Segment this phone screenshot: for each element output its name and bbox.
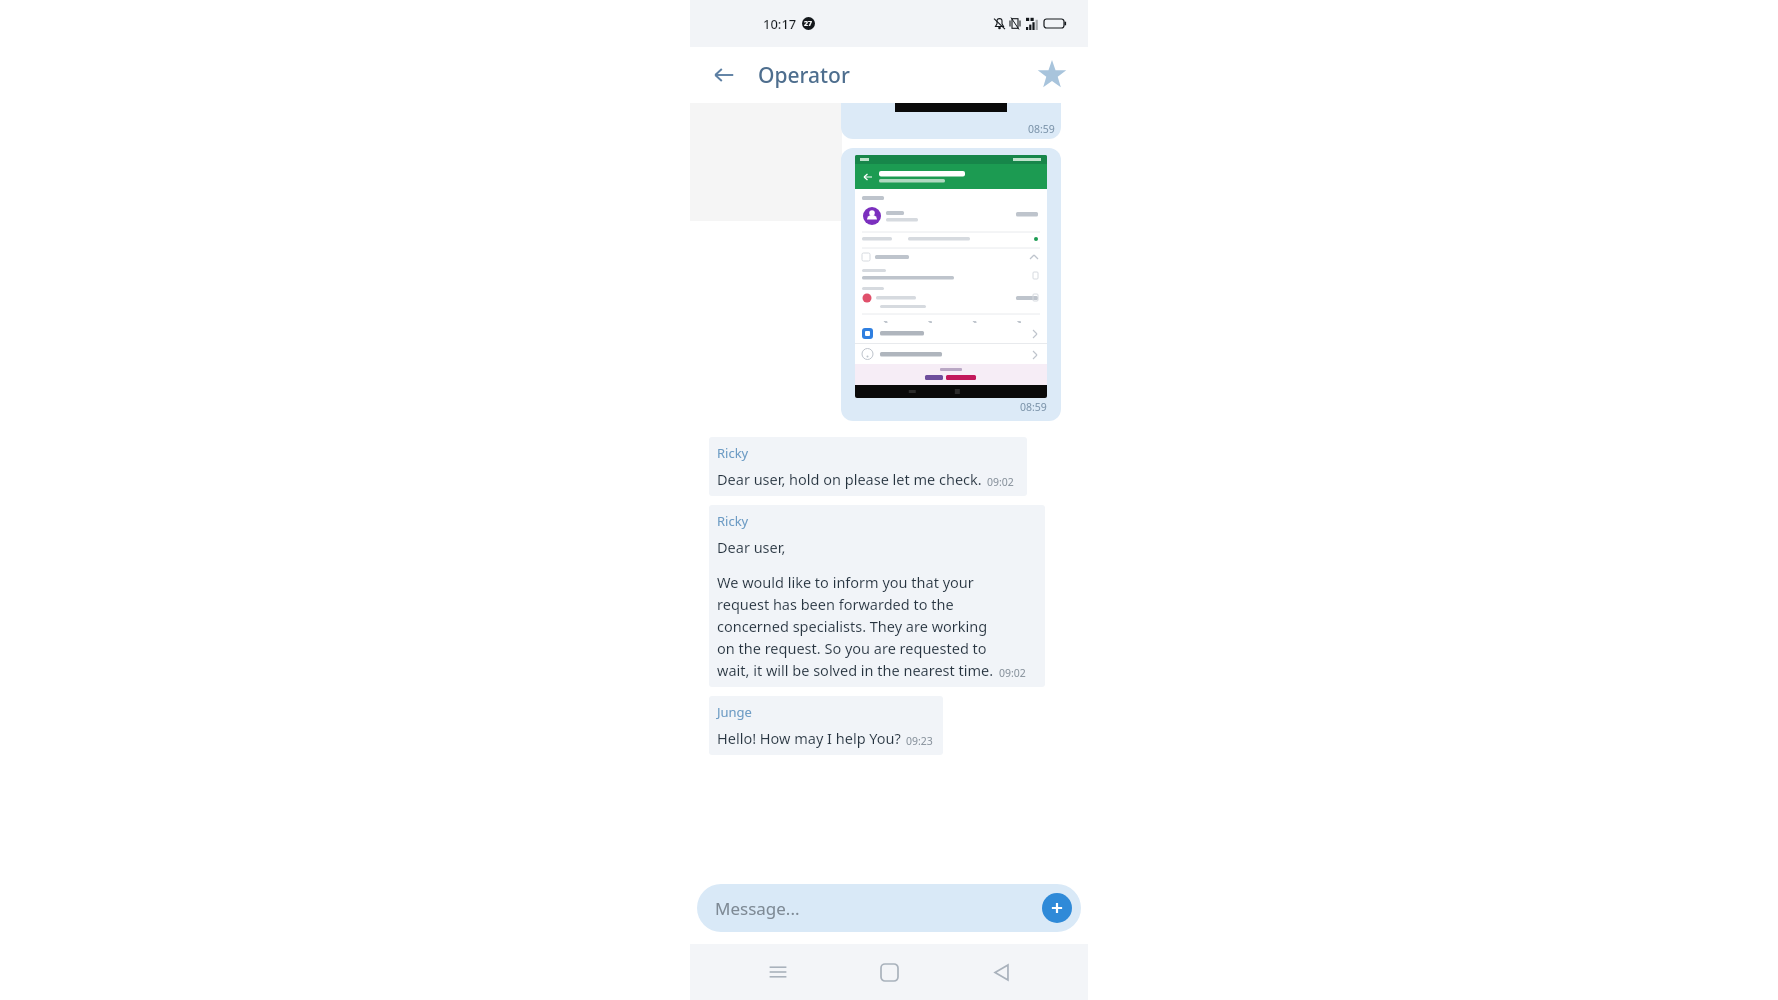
staticText: 09:02 [999, 666, 1026, 680]
staticText: We would like to inform you that your [717, 572, 974, 592]
staticText: 27 [804, 19, 813, 29]
staticText: Junge [717, 703, 752, 721]
button[interactable]: Ricky [709, 437, 1027, 496]
button[interactable]: 08:59 [841, 148, 1061, 421]
staticText: Message... [715, 897, 800, 920]
staticText: Dear user, hold on please let me check. [717, 469, 982, 489]
button[interactable]: Back [704, 55, 744, 95]
button[interactable]: Home [865, 948, 913, 996]
button[interactable]: Message... [697, 884, 1081, 932]
staticText: request has been forwarded to the [717, 594, 954, 614]
staticText: concerned specialists. They are working [717, 616, 988, 636]
staticText: Hello! How may I help You? [717, 728, 901, 748]
staticText: 08:59 [1020, 400, 1047, 414]
button[interactable]: Favorite [1030, 53, 1074, 97]
button[interactable]: Recent apps [754, 948, 802, 996]
staticText: 08:59 [1028, 122, 1055, 136]
staticText: 10:17 [763, 15, 797, 33]
button[interactable]: Ricky [709, 505, 1045, 687]
staticText: Operator [758, 61, 850, 90]
button[interactable]: Attach [1042, 893, 1072, 923]
staticText: on the request. So you are requested to [717, 638, 987, 658]
staticText: Dear user, [717, 537, 786, 557]
staticText: wait, it will be solved in the nearest t… [717, 660, 994, 680]
staticText: Ricky [717, 512, 749, 530]
button[interactable]: Junge [709, 696, 943, 755]
staticText: 09:02 [987, 475, 1014, 489]
button[interactable]: Back [977, 948, 1025, 996]
button[interactable]: 08:59 [841, 103, 1061, 139]
staticText: 09:23 [906, 734, 933, 748]
staticText: Ricky [717, 444, 749, 462]
